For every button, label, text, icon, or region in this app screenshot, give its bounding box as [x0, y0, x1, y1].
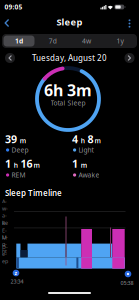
staticText: 23:34 [10, 278, 23, 285]
staticText: Tuesday, August 20 [32, 53, 107, 63]
staticText: m [18, 136, 26, 145]
staticText: 1y [117, 37, 124, 45]
staticText: 1d [15, 37, 23, 45]
button[interactable]: Previous day [5, 53, 15, 63]
staticText: 6h 3m [44, 79, 92, 101]
staticText: Total Sleep [50, 99, 85, 107]
staticText: m [33, 161, 39, 169]
button[interactable]: 4w [71, 35, 102, 46]
staticText: 05:38 [120, 279, 133, 287]
staticText: Awake [2, 198, 8, 226]
button[interactable]: 1d [3, 35, 34, 46]
staticText: 09:05 [4, 3, 22, 11]
staticText: REM [2, 220, 7, 241]
staticText: 4w [82, 37, 91, 45]
button[interactable]: Next day [124, 53, 134, 63]
staticText: 16 [21, 156, 33, 171]
button[interactable]: Wake time [124, 270, 131, 277]
staticText: Deep [11, 146, 28, 154]
staticText: h [12, 161, 20, 169]
staticText: Sleep Timeline [5, 188, 62, 198]
staticText: h [79, 136, 87, 145]
button[interactable]: 7d [37, 35, 68, 46]
button[interactable]: 1y [105, 35, 136, 46]
staticText: 4 [72, 132, 78, 146]
staticText: Light [2, 233, 8, 255]
staticText: m [79, 161, 87, 169]
button[interactable]: More [124, 18, 134, 29]
button[interactable]: Bedtime [12, 269, 19, 276]
staticText: Light [78, 146, 93, 154]
staticText: 1 [72, 156, 78, 171]
staticText: Deep [2, 243, 8, 265]
staticText: m [94, 136, 100, 145]
staticText: Awake [78, 171, 99, 179]
staticText: 8 [88, 132, 94, 146]
staticText: 1 [5, 156, 11, 171]
staticText: Sleep [56, 16, 82, 28]
button[interactable]: Back [1, 17, 11, 29]
staticText: z [14, 269, 17, 277]
staticText: REM [11, 171, 25, 179]
staticText: 7d [49, 37, 57, 45]
staticText: 39 [5, 132, 17, 146]
